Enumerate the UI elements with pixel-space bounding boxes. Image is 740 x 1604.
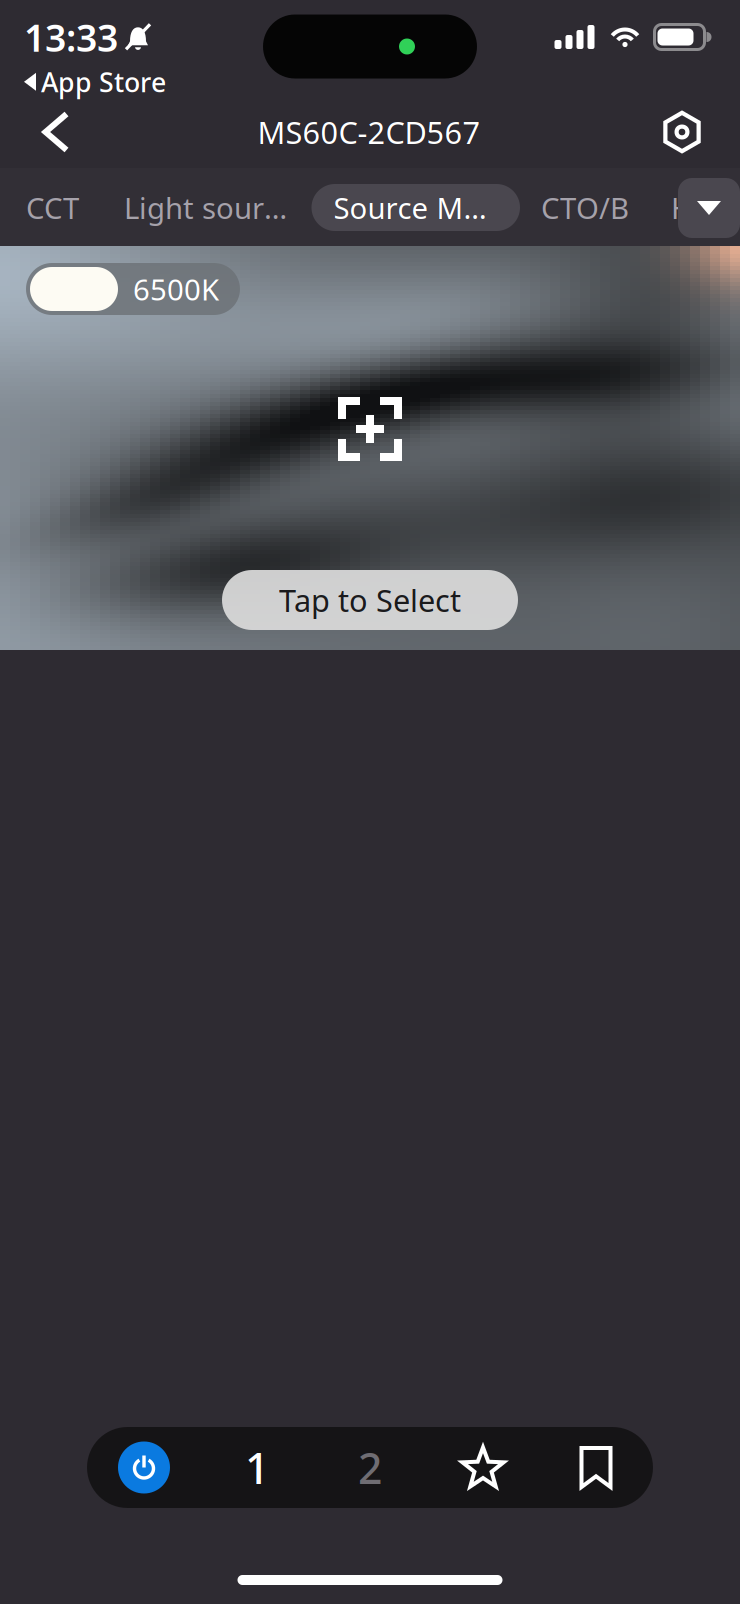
staticText: 13:33 bbox=[24, 12, 118, 62]
staticText: Tap to Select bbox=[279, 580, 461, 620]
staticText: Light sources bbox=[124, 188, 290, 227]
button[interactable]: Tap to Select bbox=[222, 570, 518, 630]
button[interactable]: CCT bbox=[2, 184, 103, 231]
button[interactable]: Settings bbox=[646, 96, 718, 168]
button[interactable]: Source Match bbox=[311, 184, 520, 231]
staticText: CCT bbox=[26, 188, 79, 227]
staticText: 2 bbox=[358, 1439, 382, 1496]
button[interactable]: HSI bbox=[650, 184, 740, 231]
button[interactable]: Favourites bbox=[426, 1427, 539, 1508]
button[interactable]: 2 bbox=[313, 1427, 426, 1508]
button[interactable]: CTO/B bbox=[520, 184, 650, 231]
staticText: MS60C-2CD567 bbox=[257, 112, 480, 152]
button[interactable]: 1 bbox=[200, 1427, 313, 1508]
button[interactable]: More modes bbox=[678, 178, 740, 238]
staticText: App Store bbox=[41, 64, 166, 99]
staticText: CTO/B bbox=[541, 188, 629, 227]
staticText: Source Match bbox=[333, 188, 498, 227]
staticText: HSI bbox=[671, 188, 719, 227]
staticText: 1 bbox=[245, 1439, 269, 1496]
staticText: 6500K bbox=[133, 269, 219, 308]
button[interactable]: Bookmarks bbox=[539, 1427, 652, 1508]
button[interactable]: Back bbox=[20, 96, 92, 168]
button[interactable]: Power bbox=[87, 1427, 200, 1508]
button[interactable]: Light sources bbox=[103, 184, 311, 231]
